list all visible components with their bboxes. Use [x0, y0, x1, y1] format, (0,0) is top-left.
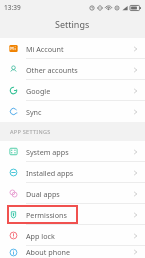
- staticText: APP SETTINGS: [10, 128, 51, 135]
- button[interactable]: Dual apps: [0, 183, 145, 204]
- staticText: Settings: [55, 18, 90, 30]
- button[interactable]: Google: [0, 80, 145, 101]
- staticText: Other accounts: [26, 65, 78, 75]
- button[interactable]: System apps: [0, 141, 145, 162]
- staticText: Mi Account: [26, 44, 64, 54]
- staticText: 13:39: [4, 3, 21, 12]
- button[interactable]: Permissions: [0, 204, 145, 225]
- button[interactable]: About phone: [0, 246, 145, 258]
- button[interactable]: Other accounts: [0, 59, 145, 80]
- button[interactable]: Mi Account: [0, 38, 145, 59]
- button[interactable]: App lock: [0, 225, 145, 246]
- staticText: Installed apps: [26, 168, 74, 178]
- button[interactable]: Installed apps: [0, 162, 145, 183]
- button[interactable]: Sync: [0, 101, 145, 122]
- staticText: Dual apps: [26, 189, 60, 199]
- staticText: Permissions: [26, 210, 67, 220]
- staticText: Google: [26, 86, 51, 96]
- staticText: Sync: [26, 107, 42, 117]
- staticText: About phone: [26, 247, 70, 257]
- staticText: App lock: [26, 231, 55, 241]
- staticText: System apps: [26, 147, 69, 157]
